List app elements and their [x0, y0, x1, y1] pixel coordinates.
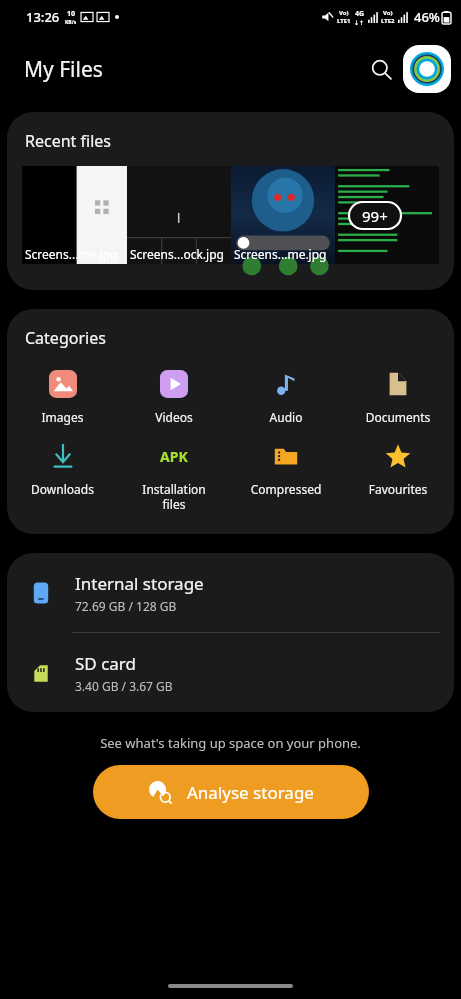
staticText: Analyse storage: [187, 781, 314, 804]
staticText: My Files: [24, 55, 103, 84]
staticText: Vo): [383, 9, 393, 17]
button[interactable]: SD card: [7, 633, 454, 712]
staticText: Compressed: [230, 481, 342, 497]
staticText: Screens...me.jpg: [234, 246, 327, 262]
button[interactable]: Downloads: [7, 439, 118, 497]
button[interactable]: Screens...me.jpg: [22, 166, 127, 264]
staticText: 3.40 GB / 3.67 GB: [75, 678, 173, 694]
staticText: Vo): [339, 9, 349, 17]
staticText: 10: [67, 9, 76, 19]
staticText: ↓↑: [354, 19, 365, 26]
button[interactable]: Search: [359, 47, 403, 91]
staticText: APK: [160, 447, 188, 466]
button[interactable]: Compressed: [230, 439, 342, 497]
staticText: Screens...ock.jpg: [130, 246, 224, 262]
button[interactable]: Internal storage: [7, 553, 454, 632]
staticText: Installation files: [118, 481, 230, 512]
button[interactable]: Documents: [342, 367, 454, 425]
staticText: KB/s: [65, 19, 77, 26]
staticText: Downloads: [7, 481, 118, 497]
staticText: See what's taking up space on your phone…: [0, 734, 461, 752]
staticText: 99+: [362, 206, 388, 226]
button[interactable]: Favourites: [342, 439, 454, 497]
button[interactable]: Images: [7, 367, 118, 425]
staticText: Favourites: [342, 481, 454, 497]
staticText: Images: [7, 409, 118, 425]
staticText: Videos: [118, 409, 230, 425]
button[interactable]: Screens...me.jpg: [231, 166, 335, 264]
staticText: LTE2: [381, 17, 395, 25]
button[interactable]: Videos: [118, 367, 230, 425]
staticText: LTE1: [337, 17, 351, 25]
staticText: 13:26: [26, 8, 60, 26]
staticText: 4G: [355, 9, 365, 19]
staticText: Screens...me.jpg: [25, 246, 118, 262]
button[interactable]: APK: [118, 439, 230, 512]
staticText: 72.69 GB / 128 GB: [75, 598, 177, 614]
staticText: Internal storage: [75, 572, 204, 595]
staticText: Categories: [25, 327, 106, 349]
staticText: Documents: [342, 409, 454, 425]
staticText: Recent files: [25, 130, 111, 152]
staticText: SD card: [75, 652, 136, 675]
staticText: 46%: [414, 8, 440, 26]
staticText: Audio: [230, 409, 342, 425]
button[interactable]: 99+: [335, 166, 439, 264]
button[interactable]: Account: [403, 45, 451, 93]
button[interactable]: Analyse storage: [93, 765, 369, 819]
button[interactable]: Screens...ock.jpg: [127, 166, 231, 264]
button[interactable]: Audio: [230, 367, 342, 425]
